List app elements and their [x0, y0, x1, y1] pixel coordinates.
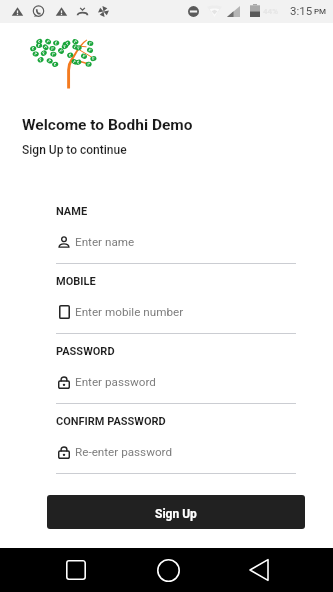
- staticText: 3:15: [290, 4, 313, 17]
- staticText: MOBILE: [56, 275, 96, 288]
- staticText: Sign Up to continue: [22, 143, 127, 157]
- staticText: Enter name: [75, 235, 135, 249]
- staticText: Enter password: [75, 375, 156, 389]
- staticText: 44%: [263, 7, 279, 16]
- button[interactable]: Home: [137, 548, 199, 592]
- staticText: Re-enter password: [75, 445, 173, 459]
- staticText: PASSWORD: [56, 345, 115, 358]
- staticText: NAME: [56, 205, 88, 218]
- button[interactable]: Back: [228, 548, 290, 592]
- staticText: CONFIRM PASSWORD: [56, 415, 166, 428]
- staticText: Enter mobile number: [75, 305, 184, 319]
- button[interactable]: Sign Up: [47, 495, 305, 529]
- staticText: PM: [314, 7, 327, 16]
- button[interactable]: Recents: [45, 548, 107, 592]
- staticText: Welcome to Bodhi Demo: [22, 116, 193, 134]
- staticText: Sign Up: [155, 507, 197, 521]
